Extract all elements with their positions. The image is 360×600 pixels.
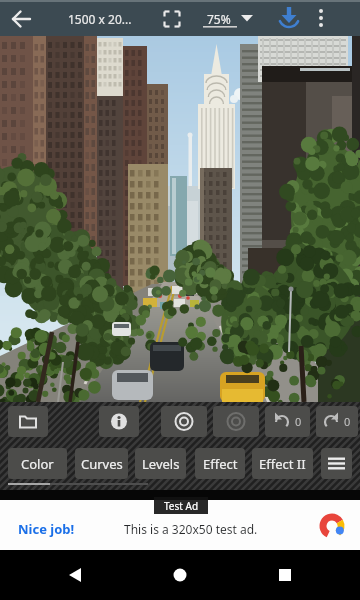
button[interactable]: Levels — [135, 448, 186, 479]
staticText: Color — [21, 455, 54, 473]
button[interactable] — [255, 555, 315, 595]
staticText: 75% — [207, 11, 231, 27]
button[interactable] — [0, 0, 40, 36]
button[interactable] — [321, 448, 352, 479]
staticText: Test Ad — [164, 499, 199, 513]
button[interactable] — [213, 406, 259, 437]
button[interactable]: 0 — [316, 406, 358, 437]
button[interactable]: Effect — [195, 448, 245, 479]
button[interactable]: Color — [8, 448, 67, 479]
button[interactable] — [161, 406, 207, 437]
button[interactable]: 0 — [265, 406, 310, 437]
button[interactable]: Effect II — [252, 448, 313, 479]
button[interactable]: Curves — [75, 448, 128, 479]
button[interactable] — [272, 0, 306, 36]
staticText: Effect II — [259, 455, 306, 473]
button[interactable] — [158, 4, 186, 32]
staticText: 1500 x 20... — [68, 11, 132, 27]
staticText: Curves — [81, 455, 123, 473]
staticText: This is a 320x50 test ad. — [124, 521, 258, 537]
button[interactable] — [306, 0, 340, 36]
staticText: Nice job! — [18, 520, 75, 538]
staticText: 0 — [344, 414, 351, 429]
button[interactable]: Nice job! — [0, 500, 360, 550]
staticText: 0 — [295, 414, 302, 429]
button[interactable]: Test Ad — [154, 497, 208, 514]
button[interactable] — [8, 406, 48, 437]
button[interactable]: 75% — [200, 0, 260, 36]
staticText: Effect — [203, 455, 238, 473]
staticText: Levels — [142, 455, 180, 473]
button[interactable] — [45, 555, 105, 595]
button[interactable] — [99, 406, 139, 437]
button[interactable] — [150, 555, 210, 595]
